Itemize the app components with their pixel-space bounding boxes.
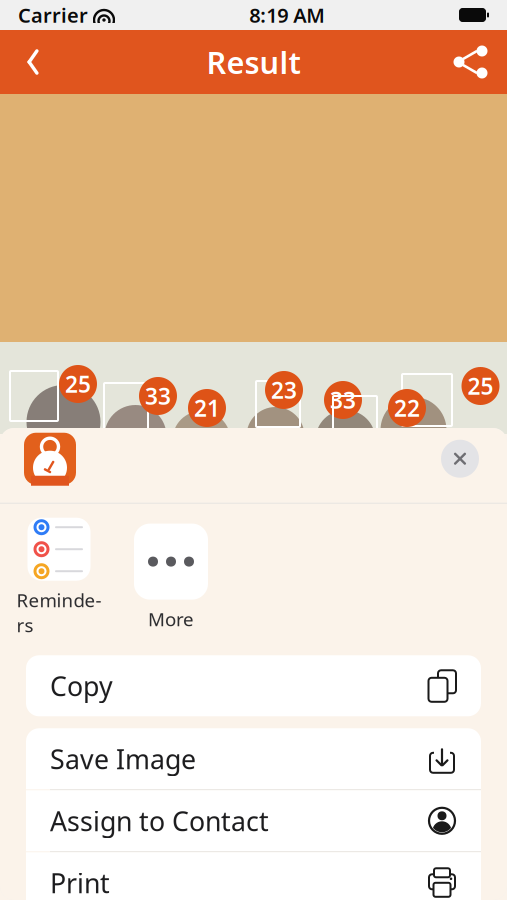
staticText: 33 — [145, 381, 171, 411]
staticText: 25 — [467, 371, 493, 401]
staticText: 33 — [330, 385, 356, 415]
button[interactable]: Print — [26, 852, 481, 900]
staticText: Carrier — [18, 2, 88, 28]
staticText: Copy — [50, 668, 113, 703]
staticText: 8:19 AM — [249, 2, 325, 28]
staticText: Print — [50, 865, 110, 900]
staticText: Save Image — [50, 741, 196, 776]
staticText: Assign to Contact — [50, 803, 269, 838]
staticText: Reminders — [16, 588, 101, 637]
button[interactable]: Back — [10, 39, 56, 85]
button[interactable]: Reminders — [14, 518, 104, 637]
staticText: 22 — [394, 393, 420, 423]
staticText: More — [148, 607, 194, 631]
button[interactable]: Save Image — [26, 728, 481, 789]
staticText: 25 — [65, 369, 91, 399]
staticText: 23 — [271, 375, 297, 405]
button[interactable]: More — [126, 524, 216, 631]
button[interactable]: Assign to Contact — [26, 790, 481, 851]
staticText: 21 — [194, 393, 220, 423]
button[interactable]: Close — [437, 436, 483, 482]
button[interactable]: Share — [445, 39, 497, 85]
staticText: Result — [206, 42, 300, 82]
button[interactable]: Copy — [26, 655, 481, 716]
